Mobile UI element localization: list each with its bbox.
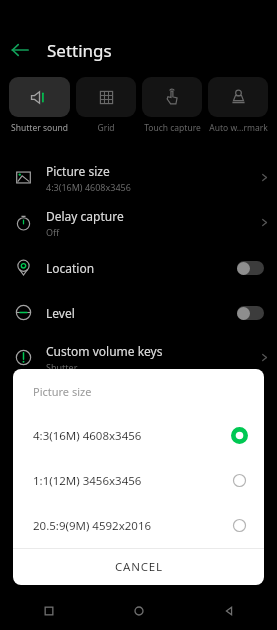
staticText: Settings	[47, 39, 112, 62]
button[interactable]: Shutter sound	[9, 77, 70, 134]
button[interactable]: 4:3(16M) 4608x3456	[13, 413, 264, 458]
staticText: 1:1(12M) 3456x3456	[33, 473, 232, 489]
button[interactable]: Picture size	[0, 155, 277, 200]
staticText: Shutter sound	[11, 122, 68, 134]
button[interactable]: Auto w…rmark	[208, 77, 268, 134]
staticText: Location	[46, 260, 237, 276]
button[interactable]: Delay capture	[0, 200, 277, 245]
staticText: 4:3(16M) 4608x3456	[33, 428, 232, 444]
button[interactable]: Back	[0, 30, 40, 70]
button[interactable]: Touch capture	[142, 77, 202, 134]
button[interactable]: CANCEL	[13, 549, 264, 585]
staticText: Off	[46, 226, 60, 238]
staticText: Grid	[97, 122, 115, 134]
staticText: Delay capture	[46, 208, 124, 224]
staticText: Level	[46, 305, 237, 321]
staticText: CANCEL	[115, 559, 163, 575]
staticText: Touch capture	[144, 122, 201, 134]
button[interactable]: Home	[122, 594, 156, 628]
button[interactable]: 1:1(12M) 3456x3456	[13, 458, 264, 503]
staticText: Picture size	[46, 163, 110, 179]
button[interactable]: Level	[0, 290, 277, 335]
staticText: 20.5:9(9M) 4592x2016	[33, 518, 232, 534]
staticText: Custom volume keys	[46, 343, 163, 359]
staticText: Shutter	[46, 361, 78, 373]
button[interactable]: Grid	[76, 77, 136, 134]
button[interactable]: Recents	[32, 594, 66, 628]
button[interactable]: 20.5:9(9M) 4592x2016	[13, 503, 264, 548]
button[interactable]: Back	[212, 594, 246, 628]
staticText: Picture size	[33, 384, 92, 399]
staticText: 4:3(16M) 4608x3456	[46, 181, 131, 193]
button[interactable]: Custom volume keys	[0, 335, 277, 380]
staticText: Auto w…rmark	[209, 122, 268, 134]
button[interactable]: Location	[0, 245, 277, 290]
